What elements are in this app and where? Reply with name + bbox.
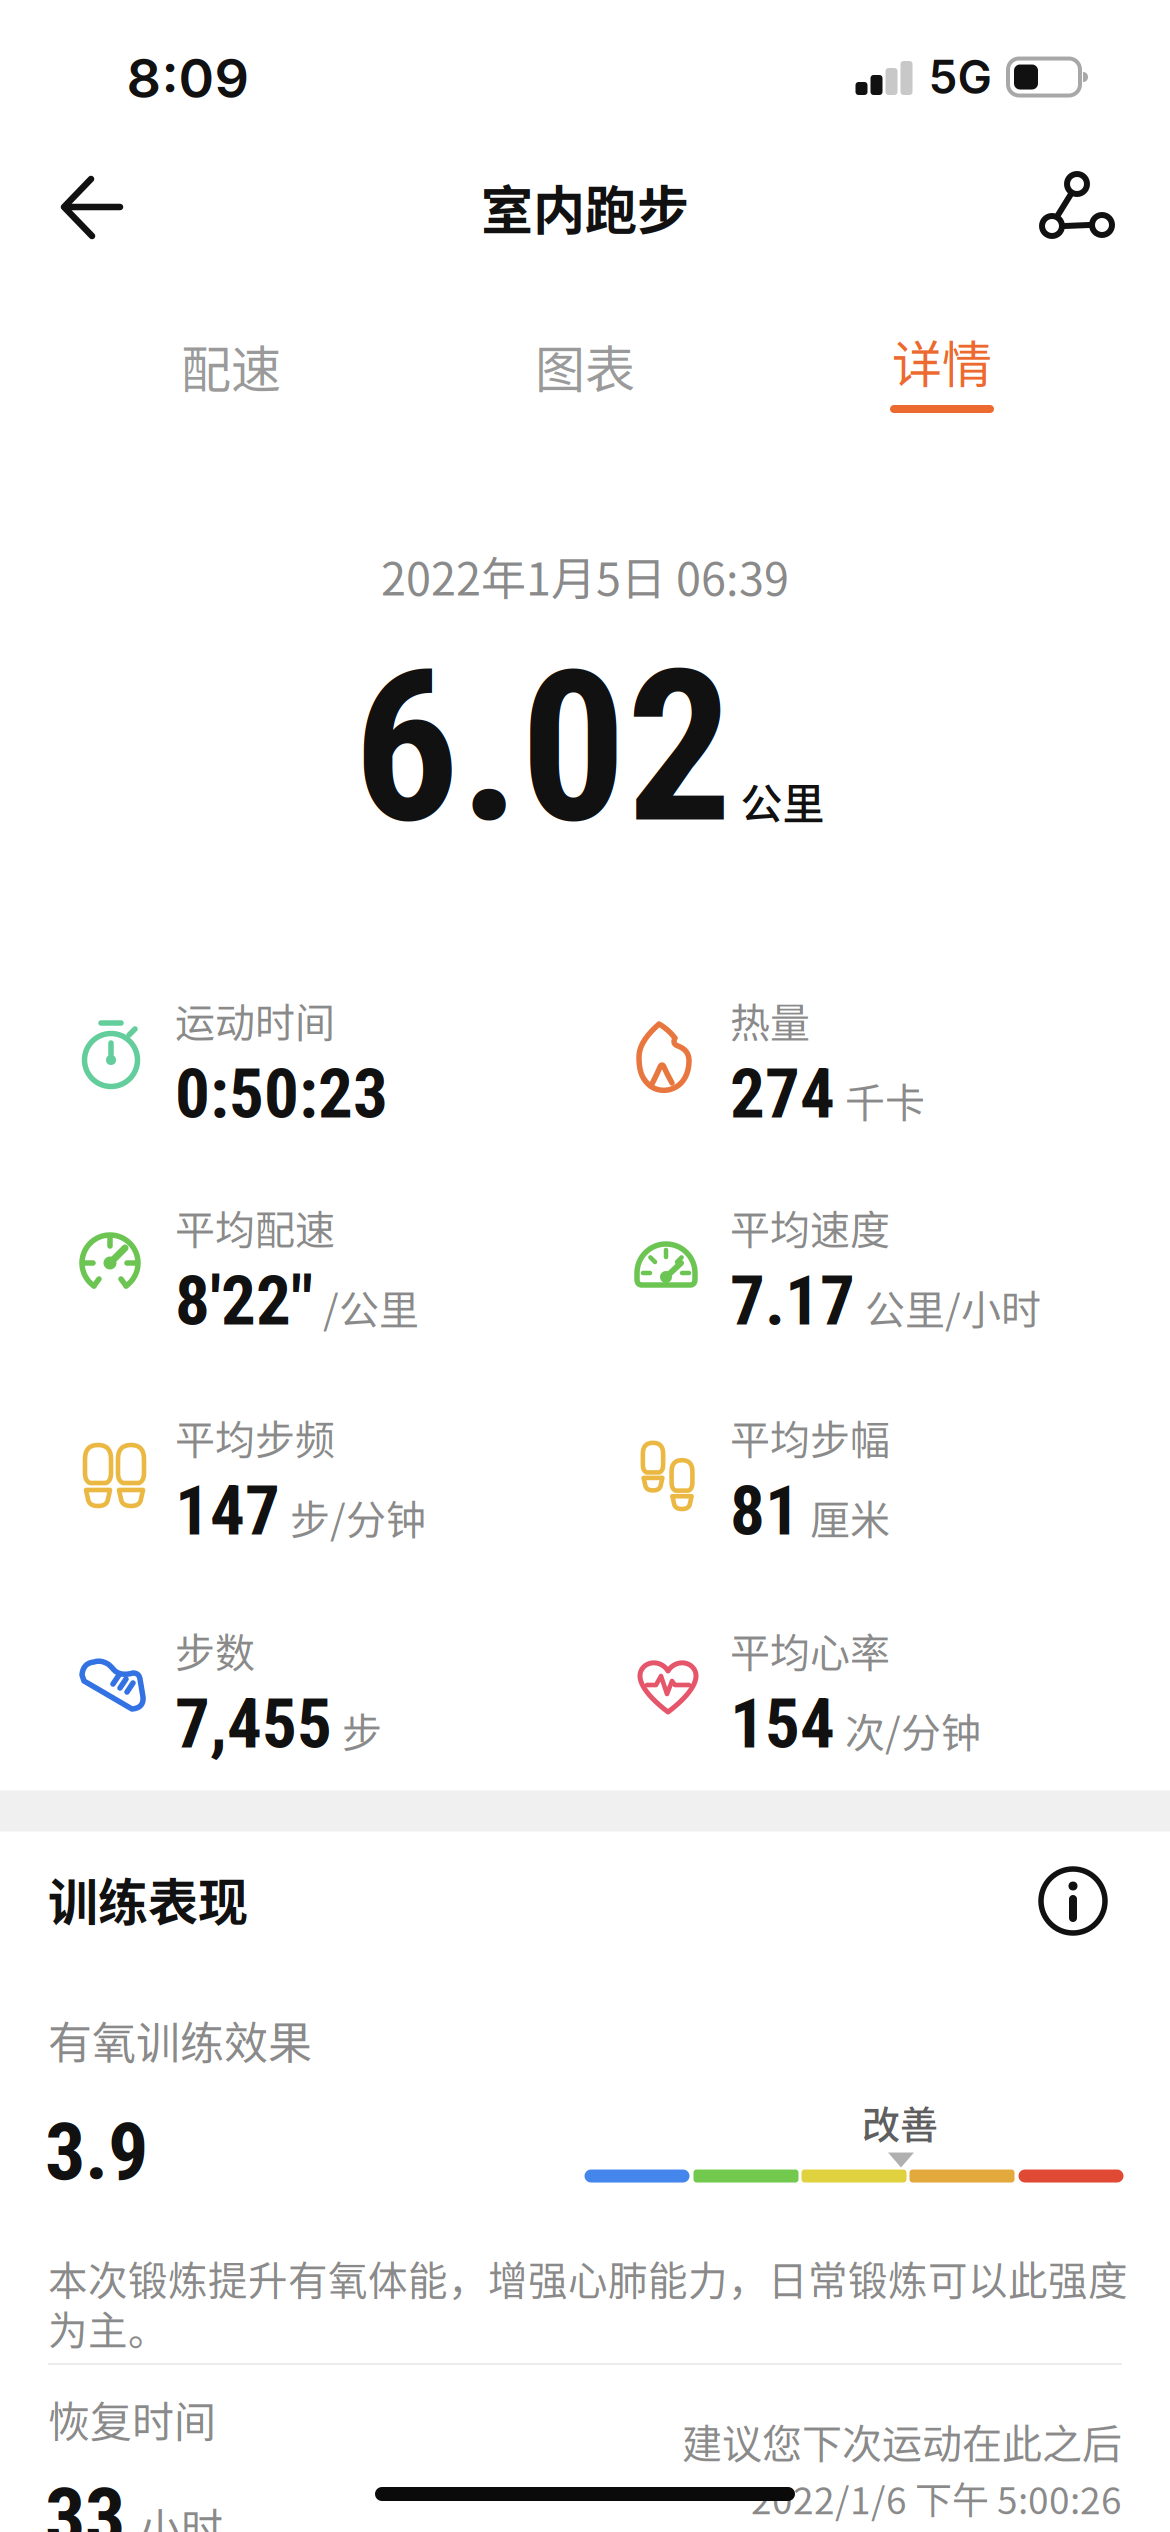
staticText: 33 — [45, 2470, 125, 2532]
staticText: 154 — [730, 1684, 835, 1764]
staticText: 7.17 — [730, 1261, 855, 1341]
staticText: 室内跑步 — [481, 169, 689, 245]
staticText: 训练表现 — [48, 1863, 248, 1935]
staticText: 平均步幅 — [730, 1408, 890, 1466]
staticText: 改善 — [862, 2094, 938, 2149]
staticText: 8'22" — [175, 1261, 313, 1341]
staticText: 81 — [730, 1471, 800, 1551]
staticText: 详情 — [892, 325, 992, 397]
staticText: 次/分钟 — [845, 1701, 981, 1759]
staticText: 147 — [175, 1471, 280, 1551]
staticText: 5G — [928, 49, 991, 105]
staticText: 有氧训练效果 — [48, 2008, 312, 2072]
staticText: 配速 — [181, 330, 281, 402]
staticText: 建议您下次运动在此之后 — [682, 2412, 1122, 2470]
button[interactable]: 配速 — [111, 321, 351, 411]
button[interactable]: Share — [1039, 170, 1115, 246]
button[interactable]: Info — [1035, 1863, 1111, 1939]
staticText: 本次锻炼提升有氧体能，增强心肺能力，日常锻炼可以此强度 — [48, 2249, 1128, 2307]
button[interactable]: Back — [56, 172, 126, 242]
staticText: 8:09 — [126, 45, 249, 111]
staticText: 7,455 — [175, 1684, 332, 1764]
staticText: 2022/1/6 下午 5:00:26 — [751, 2471, 1122, 2525]
staticText: 为主。 — [48, 2299, 168, 2357]
staticText: 3.9 — [45, 2105, 148, 2199]
staticText: 6.02 — [353, 625, 732, 870]
staticText: 公里/小时 — [865, 1278, 1041, 1336]
staticText: 2022年1月5日 06:39 — [381, 543, 789, 609]
staticText: 热量 — [730, 991, 810, 1049]
staticText: 0:50:23 — [175, 1054, 388, 1134]
staticText: 平均配速 — [175, 1198, 335, 1256]
button[interactable]: 图表 — [465, 321, 705, 411]
staticText: 恢复时间 — [48, 2389, 216, 2449]
staticText: 平均速度 — [730, 1198, 890, 1256]
staticText: 厘米 — [810, 1488, 890, 1546]
staticText: 平均心率 — [730, 1621, 890, 1679]
staticText: 步/分钟 — [290, 1488, 426, 1546]
staticText: 图表 — [535, 330, 635, 402]
staticText: 公里 — [740, 771, 824, 831]
staticText: 小时 — [139, 2496, 223, 2532]
staticText: 步数 — [175, 1621, 255, 1679]
staticText: 274 — [730, 1054, 835, 1134]
staticText: 步 — [342, 1701, 382, 1759]
staticText: 平均步频 — [175, 1408, 335, 1466]
staticText: 千卡 — [845, 1071, 925, 1129]
staticText: 运动时间 — [175, 991, 335, 1049]
staticText: /公里 — [323, 1278, 419, 1336]
button[interactable]: 详情 — [822, 316, 1062, 416]
